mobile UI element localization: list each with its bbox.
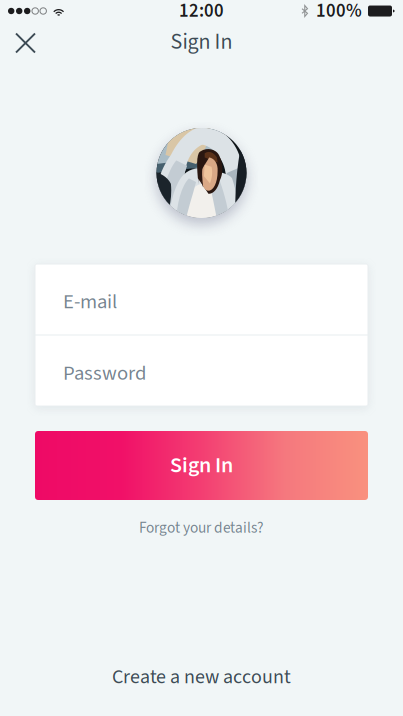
staticText: Forgot your details? (139, 517, 264, 539)
staticText: Sign In (170, 450, 233, 481)
button[interactable]: Password (35, 335, 368, 406)
staticText: 12:00 (179, 0, 224, 24)
staticText: E-mail (63, 287, 117, 316)
staticText: Password (63, 358, 146, 388)
staticText: 100% (316, 0, 362, 24)
button[interactable]: Forgot your details? (139, 516, 264, 540)
button[interactable]: E-mail (35, 264, 368, 334)
staticText: Create a new account (112, 663, 291, 691)
button[interactable]: Close (0, 22, 48, 63)
button[interactable]: Create a new account (112, 664, 291, 690)
button[interactable]: Sign In (35, 431, 368, 500)
staticText: Sign In (170, 26, 232, 58)
